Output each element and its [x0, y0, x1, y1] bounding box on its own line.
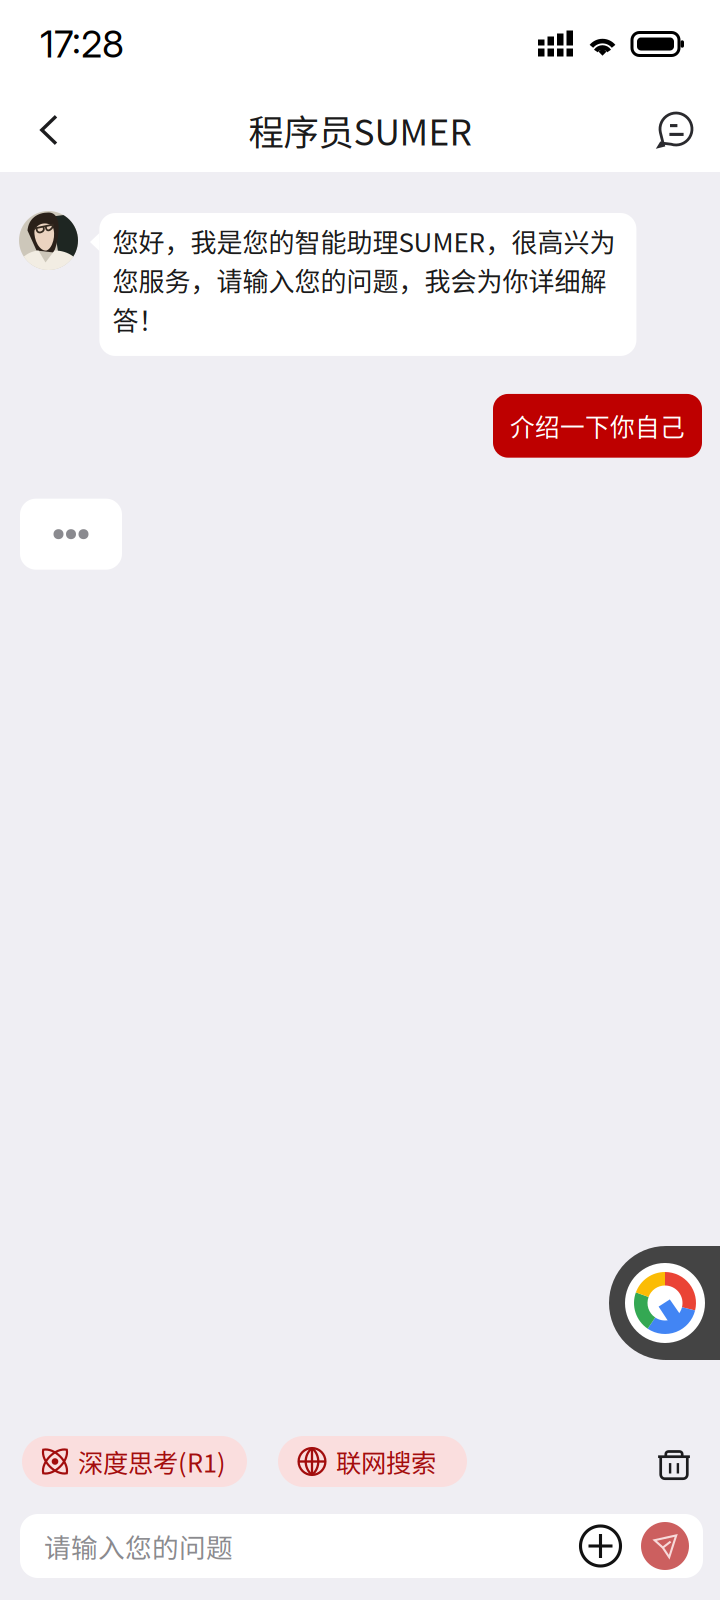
- button[interactable]: Send: [641, 1522, 689, 1570]
- staticText: 您好，我是您的智能助理SUMER，很高兴为您服务，请输入您的问题，我会为你详细解…: [112, 222, 615, 338]
- staticText: 17:28: [40, 21, 124, 67]
- staticText: 联网搜索: [336, 1443, 436, 1480]
- button[interactable]: 联网搜索: [278, 1436, 467, 1487]
- staticText: 介绍一下你自己: [510, 408, 685, 444]
- staticText: 深度思考(R1): [78, 1443, 226, 1480]
- button[interactable]: Conversations: [645, 88, 705, 172]
- staticText: 程序员SUMER: [248, 104, 471, 156]
- staticText: 请输入您的问题: [44, 1527, 233, 1565]
- button[interactable]: Add attachment: [579, 1524, 622, 1567]
- button[interactable]: Back: [19, 88, 79, 172]
- button[interactable]: 深度思考(R1): [22, 1436, 247, 1487]
- button[interactable]: Assistant: [609, 1246, 720, 1360]
- button[interactable]: Clear conversation: [648, 1436, 700, 1487]
